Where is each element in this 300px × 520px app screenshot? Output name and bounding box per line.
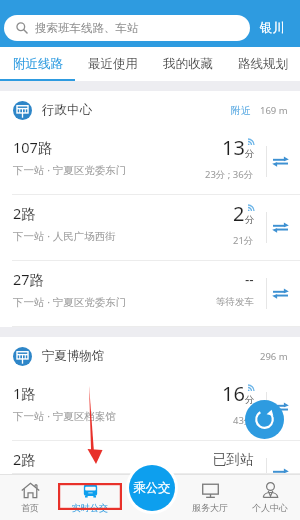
staticText: 最近使用	[88, 56, 138, 72]
staticText: 27路	[13, 269, 45, 289]
staticText: 下一站 · 人民广场西街	[13, 229, 116, 243]
button[interactable]: 107路	[0, 129, 300, 195]
button[interactable]: 实时公交	[60, 474, 120, 520]
button[interactable]: Refresh	[245, 400, 284, 439]
staticText: 169 m	[260, 104, 288, 117]
button[interactable]: 搜索班车线路、车站	[4, 15, 250, 41]
staticText: 23分 ; 36分	[205, 168, 254, 181]
staticText: 分	[245, 148, 254, 160]
button[interactable]: 行政中心	[0, 91, 300, 129]
button[interactable]: Switch direction	[271, 398, 290, 417]
staticText: 附近线路	[13, 56, 63, 72]
staticText: 首页	[21, 502, 39, 513]
staticText: 实时公交	[72, 502, 108, 513]
button[interactable]: 2路	[0, 195, 300, 261]
button[interactable]: 宁夏博物馆	[0, 337, 300, 375]
staticText: 我的收藏	[163, 56, 213, 72]
button[interactable]: 27路	[0, 261, 300, 327]
staticText: 2	[233, 200, 245, 227]
staticText: 下一站 · 宁夏区档案馆	[13, 409, 116, 423]
staticText: --	[245, 271, 254, 289]
staticText: 行政中心	[42, 102, 92, 118]
staticText: 分	[245, 394, 254, 406]
staticText: 银川	[260, 20, 285, 36]
button[interactable]: 乘公交	[126, 462, 178, 514]
staticText: 2路	[13, 449, 36, 469]
button[interactable]: 首页	[0, 474, 60, 520]
staticText: 宁夏博物馆	[42, 348, 105, 364]
button[interactable]: 个人中心	[240, 474, 300, 520]
staticText: 13	[222, 134, 245, 161]
staticText: 已到站	[213, 451, 254, 468]
staticText: 下一站 · 宁夏区党委东门	[13, 163, 127, 177]
staticText: 等待发车	[216, 296, 254, 308]
staticText: 296 m	[260, 350, 288, 363]
staticText: 下一站 · 宁夏区党委东门	[13, 295, 127, 309]
button[interactable]: 最近使用	[75, 47, 150, 81]
staticText: 2路	[13, 203, 36, 223]
staticText: 搜索班车线路、车站	[35, 21, 139, 35]
staticText: 21分	[233, 234, 254, 247]
button[interactable]: 银川	[259, 16, 286, 40]
staticText: 路线规划	[238, 56, 288, 72]
staticText: 分	[245, 214, 254, 226]
button[interactable]: 服务大厅	[180, 474, 240, 520]
staticText: 43分	[233, 414, 254, 427]
button[interactable]: 附近线路	[0, 47, 75, 81]
button[interactable]: Switch direction	[271, 218, 290, 237]
button[interactable]: 2路	[0, 441, 300, 474]
staticText: 个人中心	[252, 502, 288, 513]
staticText: 16	[222, 380, 245, 407]
staticText: 107路	[13, 137, 53, 157]
button[interactable]: 路线规划	[225, 47, 300, 81]
button[interactable]: Switch direction	[271, 464, 290, 483]
staticText: 1路	[13, 383, 36, 403]
button[interactable]: Switch direction	[271, 152, 290, 171]
staticText: 乘公交	[133, 480, 171, 496]
staticText: 附近	[231, 104, 251, 117]
button[interactable]: 1路	[0, 375, 300, 441]
button[interactable]: 我的收藏	[150, 47, 225, 81]
button[interactable]: Switch direction	[271, 284, 290, 303]
staticText: 服务大厅	[192, 502, 228, 513]
